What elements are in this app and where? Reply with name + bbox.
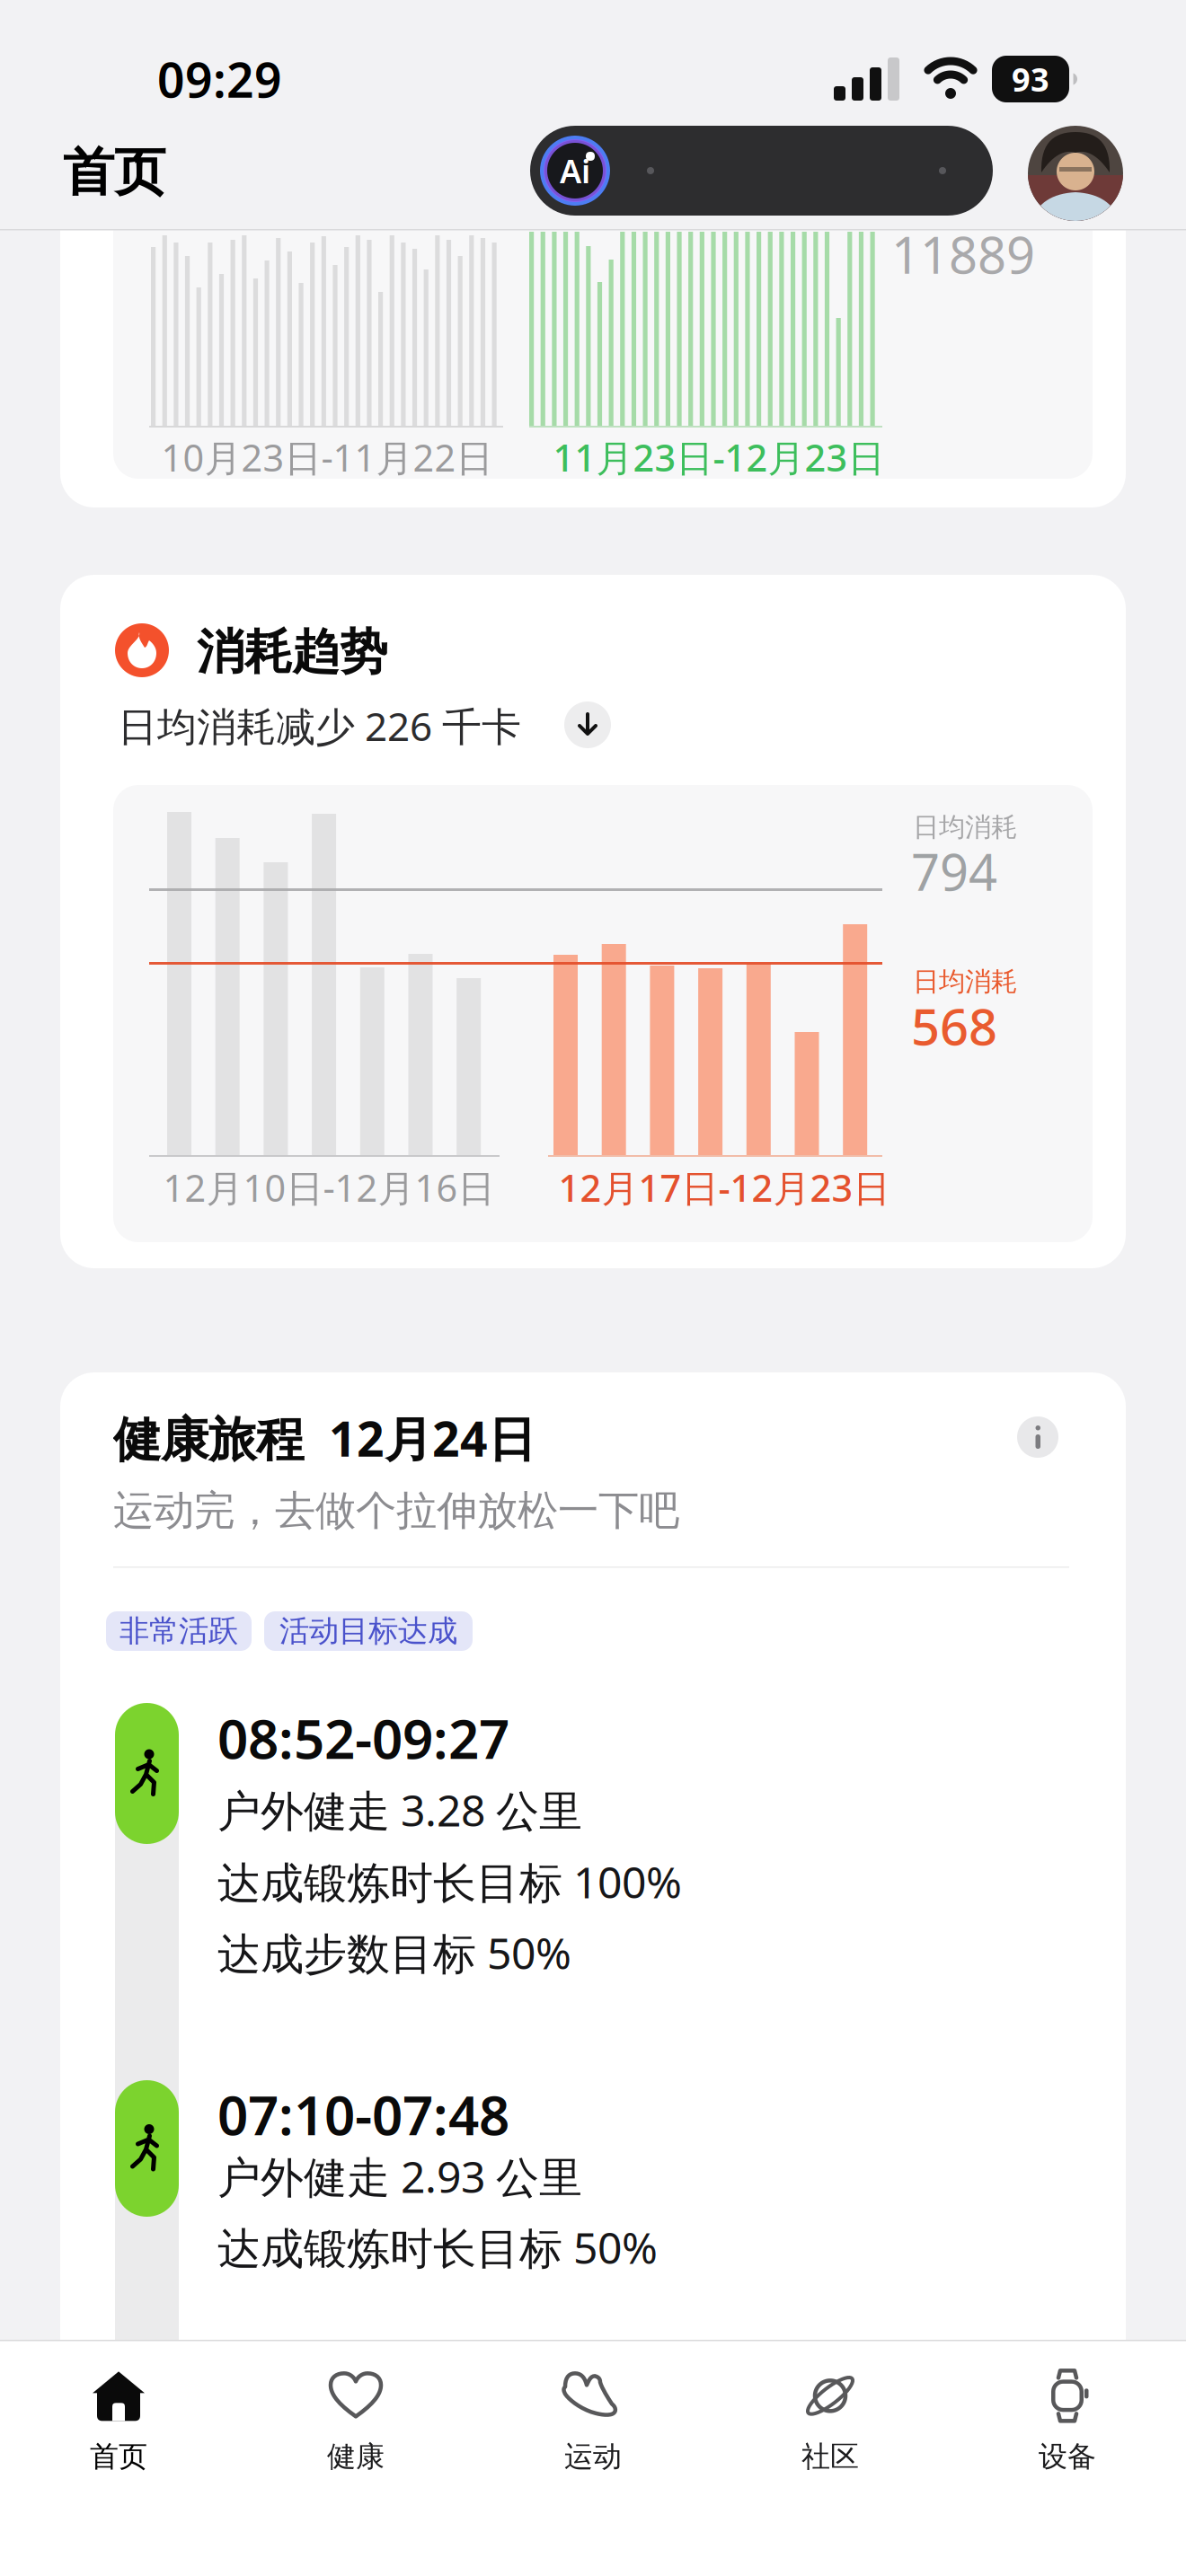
- staticText: 09:29: [157, 47, 282, 111]
- staticText: 达成锻炼时长目标 50%: [217, 2219, 658, 2276]
- button[interactable]: 健康: [237, 2362, 474, 2479]
- staticText: 达成锻炼时长目标 100%: [217, 1853, 682, 1910]
- staticText: 户外健走 2.93 公里: [217, 2148, 582, 2205]
- staticText: 93: [1012, 58, 1049, 101]
- staticText: 健康: [327, 2439, 385, 2474]
- staticText: 首页: [63, 141, 165, 204]
- staticText: 08:52-09:27: [217, 1702, 509, 1774]
- button[interactable]: 社区: [712, 2362, 949, 2479]
- staticText: 达成步数目标 50%: [217, 1924, 571, 1981]
- staticText: 10月23日-11月22日: [161, 433, 493, 482]
- button[interactable]: 设备: [949, 2362, 1186, 2479]
- staticText: 运动完，去做个拉伸放松一下吧: [113, 1486, 679, 1536]
- staticText: 12月10日-12月16日: [163, 1163, 495, 1212]
- staticText: 794: [911, 838, 997, 905]
- staticText: 日均消耗: [913, 966, 1017, 998]
- button[interactable]: [115, 1703, 179, 1844]
- staticText: 日均消耗减少 226 千卡: [118, 700, 521, 752]
- staticText: 消耗趋势: [197, 623, 387, 681]
- staticText: 社区: [801, 2439, 859, 2474]
- staticText: 12月17日-12月23日: [558, 1163, 890, 1212]
- button[interactable]: [60, 575, 1126, 1268]
- button[interactable]: [60, 1372, 1126, 2396]
- button[interactable]: [1017, 1416, 1058, 1458]
- staticText: 首页: [90, 2439, 147, 2474]
- staticText: Ai: [560, 149, 590, 192]
- button[interactable]: [1028, 126, 1123, 221]
- button[interactable]: [564, 701, 611, 748]
- staticText: 日均消耗: [913, 811, 1017, 843]
- staticText: 运动: [564, 2439, 622, 2474]
- button[interactable]: [60, 135, 1126, 507]
- staticText: 568: [911, 992, 997, 1059]
- staticText: 非常活跃: [119, 1613, 238, 1649]
- button[interactable]: Ai: [530, 126, 993, 216]
- staticText: 07:10-07:48: [217, 2079, 509, 2150]
- staticText: 11889: [891, 221, 1035, 288]
- staticText: 11月23日-12月23日: [553, 433, 885, 482]
- button[interactable]: 首页: [0, 2362, 237, 2479]
- button[interactable]: [115, 2080, 179, 2217]
- button[interactable]: 运动: [474, 2362, 712, 2479]
- staticText: 户外健走 3.28 公里: [217, 1781, 582, 1838]
- staticText: 设备: [1039, 2439, 1096, 2474]
- staticText: 活动目标达成: [279, 1613, 457, 1649]
- staticText: 健康旅程 12月24日: [113, 1406, 535, 1470]
